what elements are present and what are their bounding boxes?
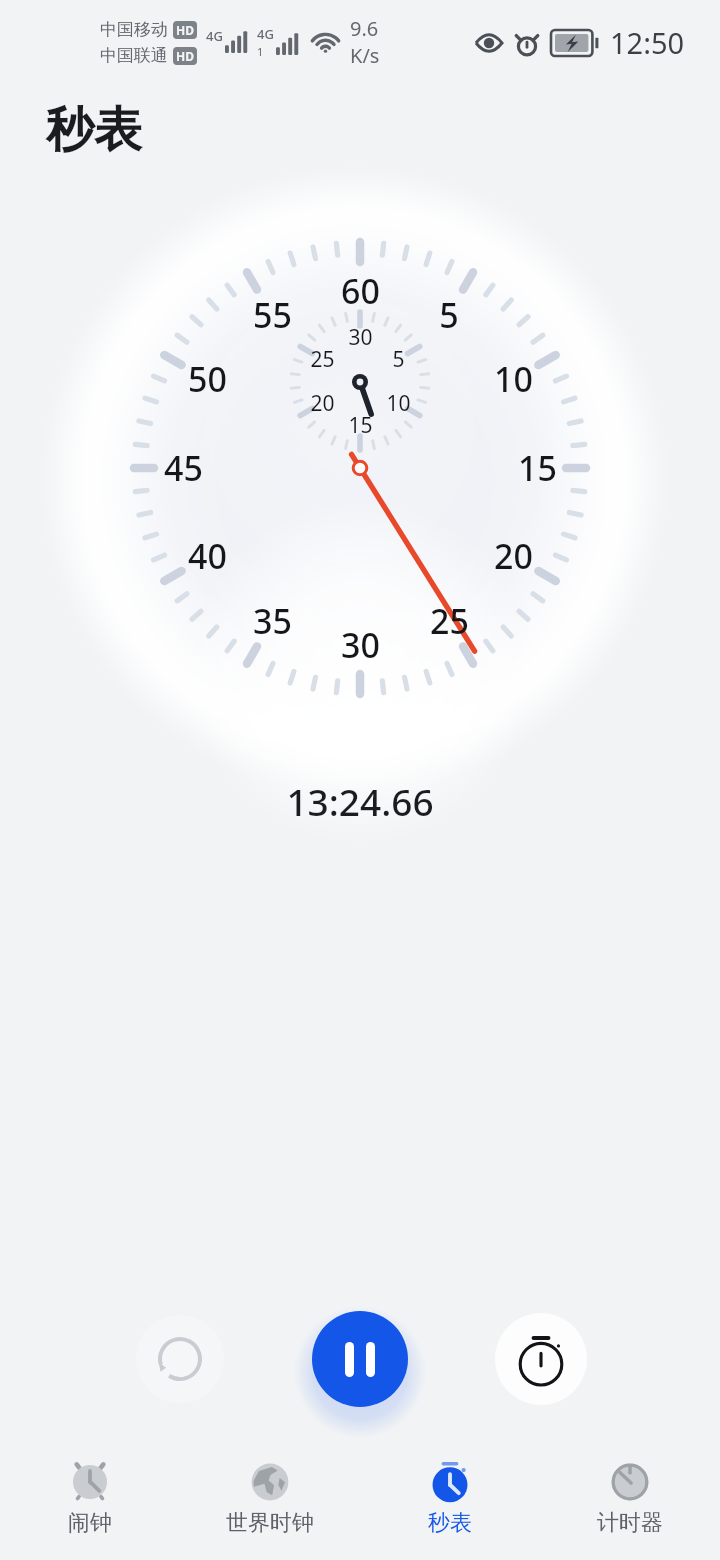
staticText: HD: [176, 48, 194, 64]
staticText: 4G: [257, 25, 274, 43]
staticText: 1: [257, 44, 264, 59]
staticText: 中国移动: [100, 19, 168, 40]
staticText: 30: [348, 323, 373, 352]
staticText: 秒表: [46, 100, 142, 160]
staticText: 20: [494, 533, 533, 579]
staticText: 55: [253, 292, 292, 338]
staticText: 60: [341, 268, 380, 314]
staticText: 计时器: [597, 1509, 663, 1537]
staticText: 4G: [206, 27, 223, 45]
staticText: K/s: [350, 42, 380, 69]
button[interactable]: 闹钟: [0, 1440, 180, 1537]
staticText: 15: [348, 411, 373, 440]
staticText: 中国联通: [100, 45, 168, 66]
button[interactable]: 计时器: [540, 1440, 720, 1537]
staticText: 45: [164, 445, 203, 491]
staticText: 10: [494, 356, 533, 402]
staticText: 5: [439, 292, 459, 338]
staticText: HD: [176, 22, 194, 38]
button[interactable]: Reset: [136, 1315, 224, 1403]
staticText: 世界时钟: [226, 1509, 314, 1537]
staticText: 10: [386, 389, 411, 418]
staticText: 40: [188, 533, 227, 579]
button[interactable]: Lap: [495, 1313, 587, 1405]
staticText: 秒表: [428, 1509, 472, 1537]
staticText: 15: [518, 445, 557, 491]
staticText: 50: [188, 356, 227, 402]
staticText: 闹钟: [68, 1509, 112, 1537]
staticText: 20: [310, 389, 335, 418]
staticText: 35: [253, 598, 292, 644]
button[interactable]: Pause: [312, 1311, 408, 1407]
staticText: 25: [430, 598, 469, 644]
staticText: 5: [392, 345, 405, 374]
staticText: 25: [310, 345, 335, 374]
button[interactable]: 秒表: [360, 1440, 540, 1537]
button[interactable]: 世界时钟: [180, 1440, 360, 1537]
staticText: 30: [341, 622, 380, 668]
staticText: 9.6: [350, 15, 379, 42]
staticText: 12:50: [610, 23, 685, 62]
staticText: 13:24.66: [0, 776, 720, 826]
